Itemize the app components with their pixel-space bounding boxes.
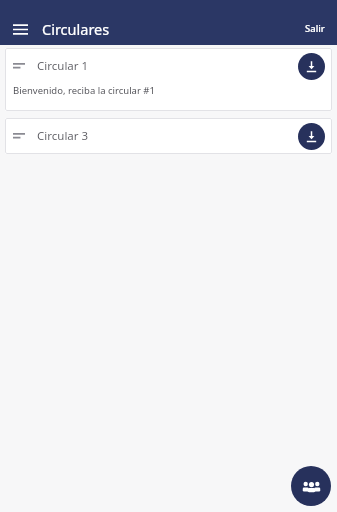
button[interactable]: Download [298,53,325,80]
staticText: Circular 1 [37,58,89,74]
staticText: Bienvenido, reciba la circular #1 [13,84,155,97]
staticText: Circulares [42,19,110,39]
staticText: Circular 3 [37,128,89,144]
button[interactable]: Salir [297,18,333,39]
button[interactable]: Download [298,123,325,150]
button[interactable]: Menu [8,17,32,41]
button[interactable]: Circular 1 [5,48,332,111]
button[interactable]: Contacts [291,466,331,506]
button[interactable]: Circular 3 [5,118,332,154]
staticText: Salir [305,22,325,35]
